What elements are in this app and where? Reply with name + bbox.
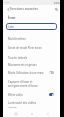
button[interactable]: Home [28,110,35,117]
staticText: Fonctions avancées [10,7,38,11]
button[interactable]: Effets vidéo [3,91,60,98]
staticText: Multi-fenêtres [8,37,26,41]
button[interactable]: Mouvements et gestes [3,61,60,68]
button[interactable]: Captures d'écran et [3,78,60,88]
button[interactable]: Recents [12,110,19,117]
button[interactable]: Multi-fenêtres [3,35,60,42]
button[interactable]: Luminosité des vidéos [3,99,60,109]
button[interactable]: Toggle [49,71,54,74]
button[interactable]: Back [5,6,11,12]
staticText: Effets vidéo [8,93,23,97]
staticText: Normal [8,105,17,108]
button[interactable]: Touche latérale [3,54,60,61]
button[interactable]: Search [53,6,59,12]
staticText: 10:05 [4,1,10,4]
staticText: Labs [8,25,14,29]
staticText: Mouvements et gestes [8,63,37,67]
button[interactable]: Toggle [49,93,54,96]
button[interactable]: Geste de mode Plein écran [3,44,60,51]
staticText: Luminosité des vidéos [8,101,37,105]
staticText: Mode Utilisation à une main [8,71,44,75]
button[interactable]: Back [44,110,51,117]
staticText: Captures d'écran et [8,80,33,84]
button[interactable]: Labs [6,23,57,30]
staticText: Geste de mode Plein écran [8,46,42,50]
staticText: Écran [8,16,16,20]
staticText: Touche latérale [8,56,28,60]
staticText: enregistrement d'écran [8,84,38,88]
button[interactable]: Mode Utilisation à une main [3,69,60,76]
